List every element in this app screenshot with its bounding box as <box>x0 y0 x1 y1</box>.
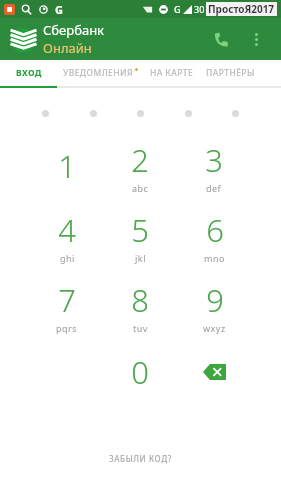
button[interactable]: 5 <box>103 201 177 271</box>
staticText: tuv <box>133 322 148 334</box>
staticText: jkl <box>135 252 146 264</box>
staticText: 5 <box>131 209 149 251</box>
staticText: ЗАБЫЛИ КОД? <box>109 453 172 464</box>
staticText: 7 <box>58 279 76 321</box>
staticText: 9 <box>206 279 224 321</box>
staticText: ПростоЯ2017 <box>208 2 275 16</box>
staticText: Онлайн <box>43 39 92 57</box>
button[interactable]: 8 <box>103 271 177 341</box>
staticText: def <box>206 182 222 194</box>
button[interactable]: УВЕДОМЛЕНИЯ <box>57 60 144 86</box>
staticText: 0 <box>131 351 149 393</box>
staticText: НА КАРТЕ <box>150 67 194 79</box>
button[interactable]: 1 <box>30 131 103 201</box>
staticText: G <box>174 3 181 15</box>
staticText: G <box>55 2 63 17</box>
staticText: pqrs <box>56 322 78 334</box>
staticText: 30 <box>194 3 205 15</box>
button[interactable]: 0 <box>103 341 177 403</box>
button[interactable]: 7 <box>30 271 103 341</box>
button[interactable]: ПАРТНЁРЫ <box>200 60 261 86</box>
button[interactable]: 9 <box>177 271 251 341</box>
button[interactable]: ВХОД <box>0 60 57 86</box>
button[interactable]: 4 <box>30 201 103 271</box>
staticText: 3 <box>205 139 223 181</box>
button[interactable]: ЗАБЫЛИ КОД? <box>103 447 178 470</box>
button[interactable]: Backspace <box>177 341 251 403</box>
button[interactable]: НА КАРТЕ <box>144 60 200 86</box>
button[interactable]: 2 <box>103 131 177 201</box>
staticText: ghi <box>60 252 75 264</box>
staticText: УВЕДОМЛЕНИЯ <box>63 67 133 79</box>
staticText: 2 <box>131 139 149 181</box>
button[interactable]: More options <box>241 24 271 54</box>
staticText: wxyz <box>203 322 226 334</box>
staticText: 1 <box>58 145 76 187</box>
button[interactable]: 6 <box>177 201 251 271</box>
staticText: mno <box>204 252 225 264</box>
staticText: ПАРТНЁРЫ <box>206 67 255 79</box>
staticText: ВХОД <box>16 67 42 79</box>
staticText: 4 <box>58 209 76 251</box>
staticText: 6 <box>206 209 224 251</box>
button[interactable]: 3 <box>177 131 251 201</box>
staticText: abc <box>132 182 149 194</box>
button[interactable]: Call <box>205 23 237 55</box>
staticText: 8 <box>131 279 149 321</box>
staticText: Сбербанк <box>43 21 105 39</box>
